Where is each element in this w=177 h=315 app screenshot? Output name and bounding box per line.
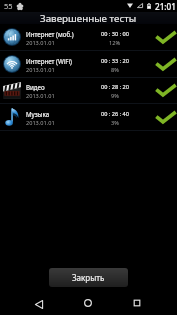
- button[interactable]: Back: [21, 293, 57, 315]
- button[interactable]: Музыка: [0, 104, 177, 131]
- staticText: 00 : 26 : 40: [101, 110, 130, 118]
- button[interactable]: Интернет (WiFi): [0, 51, 177, 78]
- button[interactable]: Видео: [0, 77, 177, 104]
- staticText: Закрыть: [72, 272, 105, 283]
- staticText: Музыка: [26, 110, 50, 118]
- button[interactable]: Home: [70, 293, 106, 315]
- staticText: Видео: [26, 83, 45, 91]
- staticText: Интернет (WiFi): [26, 57, 72, 65]
- staticText: 2013.01.01: [26, 92, 55, 100]
- staticText: Завершенные тесты: [40, 12, 137, 24]
- staticText: 55: [4, 1, 13, 11]
- staticText: 00 : 33 : 20: [101, 57, 130, 65]
- staticText: Интернет (моб.): [26, 30, 74, 38]
- staticText: 3%: [111, 119, 119, 127]
- staticText: 00 : 28 : 20: [101, 83, 130, 91]
- staticText: 8%: [111, 66, 119, 74]
- button[interactable]: Закрыть: [49, 268, 128, 287]
- staticText: 00 : 30 : 00: [101, 30, 130, 38]
- staticText: 2013.01.01: [26, 39, 55, 47]
- button[interactable]: Recent apps: [119, 293, 155, 315]
- staticText: 2013.01.01: [26, 66, 55, 74]
- staticText: 2013.01.01: [26, 119, 55, 127]
- button[interactable]: Интернет (моб.): [0, 24, 177, 51]
- staticText: 21:01: [155, 1, 176, 12]
- staticText: 12%: [109, 39, 121, 47]
- staticText: 9%: [111, 92, 119, 100]
